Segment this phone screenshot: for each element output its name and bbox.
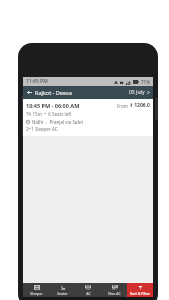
staticText: 7h 15m • 6 Seats left: [26, 111, 72, 117]
staticText: ₹ 1206.0: [130, 102, 150, 109]
staticText: 2+1 Sleeper AC: [26, 126, 58, 132]
staticText: Sleeper: [30, 291, 43, 296]
button[interactable]: Sleeper: [23, 283, 49, 297]
staticText: Sort & Filter: [130, 291, 150, 296]
staticText: 05 July: [129, 89, 145, 96]
staticText: 11:45 PM: [26, 78, 48, 85]
staticText: AC: [86, 291, 91, 296]
staticText: 10:45 PM - 06:00 AM: [26, 102, 80, 109]
staticText: Rajkot - Deesa: [35, 89, 126, 96]
staticText: Seater: [57, 291, 68, 296]
button[interactable]: AC: [75, 283, 101, 297]
staticText: Non-AC: [108, 291, 121, 296]
staticText: Nidhi - Pranjel via Sabri: [32, 119, 84, 125]
button[interactable]: Sort & Filter: [127, 283, 153, 297]
button[interactable]: 05 July: [126, 86, 153, 99]
button[interactable]: Non-AC: [101, 283, 127, 297]
staticText: From: [117, 103, 130, 109]
button[interactable]: Back: [23, 86, 35, 99]
button[interactable]: Seater: [49, 283, 75, 297]
button[interactable]: 10:45 PM - 06:00 AM: [23, 99, 153, 136]
staticText: 71%: [141, 79, 150, 85]
